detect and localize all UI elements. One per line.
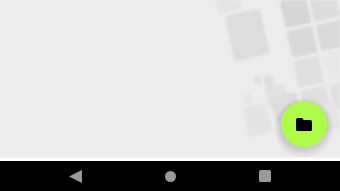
button[interactable]: Back bbox=[55, 161, 95, 191]
button[interactable]: Home bbox=[150, 161, 190, 191]
button[interactable]: Recents bbox=[245, 161, 285, 191]
button[interactable]: New folder bbox=[281, 101, 327, 147]
